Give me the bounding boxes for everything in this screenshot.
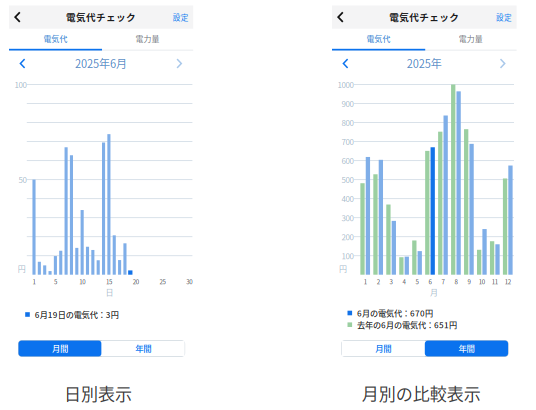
staticText: 600 <box>342 155 354 166</box>
button[interactable]: 年間 <box>0 0 536 410</box>
staticText: 電気代チェック <box>389 10 459 24</box>
button[interactable]: Previous period <box>0 0 536 410</box>
button[interactable]: 設定 <box>0 0 536 410</box>
staticText: 20 <box>133 277 139 286</box>
staticText: 700 <box>342 136 354 147</box>
staticText: 1 <box>32 277 35 286</box>
staticText: 1000 <box>338 79 354 90</box>
staticText: 6 <box>428 277 431 286</box>
staticText: 月 <box>430 286 438 298</box>
staticText: 電気代 <box>43 33 67 44</box>
staticText: 800 <box>342 117 354 128</box>
staticText: 去年の6月の電気代：651円 <box>357 319 457 331</box>
staticText: 日別表示 <box>64 381 132 405</box>
staticText: 年間 <box>135 342 151 354</box>
staticText: 4 <box>403 277 406 286</box>
staticText: 9 <box>467 277 470 286</box>
staticText: 25 <box>159 277 165 286</box>
button[interactable]: Next period <box>0 0 536 410</box>
staticText: 50 <box>18 174 26 185</box>
button[interactable]: 設定 <box>0 0 536 410</box>
button[interactable]: Back <box>0 0 536 410</box>
button[interactable]: Next period <box>0 0 536 410</box>
button[interactable]: 電力量 <box>0 0 536 410</box>
staticText: 年間 <box>458 342 474 354</box>
staticText: 月間 <box>52 342 68 354</box>
staticText: 日 <box>106 286 114 298</box>
button[interactable]: 年間 <box>0 0 536 410</box>
staticText: 円 <box>18 263 26 274</box>
staticText: 10 <box>479 277 485 286</box>
staticText: 8 <box>454 277 457 286</box>
button[interactable]: Back <box>0 0 536 410</box>
staticText: 円 <box>339 263 347 274</box>
staticText: 2025年 <box>407 55 442 71</box>
staticText: 12 <box>505 277 511 286</box>
staticText: 2 <box>377 277 380 286</box>
staticText: 電気代チェック <box>66 10 136 24</box>
staticText: 月別の比較表示 <box>362 381 481 405</box>
staticText: 10 <box>79 277 85 286</box>
staticText: 6月19日の電気代：3円 <box>35 309 119 320</box>
button[interactable]: 電気代 <box>0 0 536 410</box>
staticText: 3 <box>390 277 393 286</box>
staticText: 300 <box>342 212 354 223</box>
staticText: 設定 <box>496 12 512 23</box>
button[interactable]: 月間 <box>0 0 536 410</box>
staticText: 500 <box>342 174 354 185</box>
staticText: 月間 <box>375 342 391 354</box>
staticText: 30 <box>186 277 192 286</box>
button[interactable]: 月間 <box>0 0 536 410</box>
staticText: 5 <box>415 277 418 286</box>
staticText: 200 <box>342 231 354 242</box>
staticText: 400 <box>342 193 354 204</box>
button[interactable]: 電力量 <box>0 0 536 410</box>
staticText: 100 <box>14 79 26 90</box>
staticText: 11 <box>492 277 498 286</box>
staticText: 7 <box>441 277 444 286</box>
staticText: 900 <box>342 98 354 109</box>
staticText: 電気代 <box>366 33 390 44</box>
staticText: 100 <box>342 250 354 261</box>
staticText: 2025年6月 <box>75 55 127 71</box>
staticText: 5 <box>54 277 57 286</box>
staticText: 6月の電気代：670円 <box>357 307 433 319</box>
staticText: 15 <box>106 277 112 286</box>
staticText: 1 <box>364 277 367 286</box>
button[interactable]: 電気代 <box>0 0 536 410</box>
button[interactable]: Previous period <box>0 0 536 410</box>
staticText: 設定 <box>173 12 189 23</box>
staticText: 電力量 <box>135 33 159 44</box>
staticText: 電力量 <box>459 33 483 44</box>
